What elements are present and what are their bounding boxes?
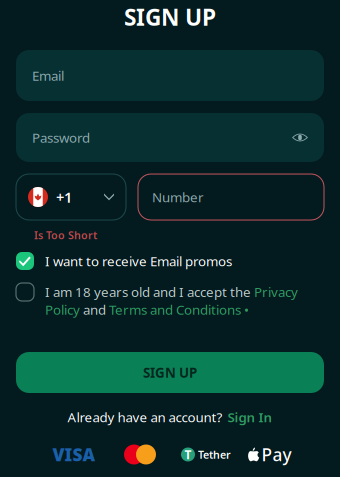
staticText: Number <box>152 188 204 206</box>
staticText: Already have an account? <box>67 408 222 426</box>
button[interactable]: +1 <box>16 174 126 220</box>
staticText: SIGN UP <box>143 364 197 381</box>
staticText: T <box>184 446 191 462</box>
staticText: I am 18 years old and I accept the Priva… <box>45 283 298 318</box>
staticText: Email <box>32 67 64 84</box>
staticText: Tether <box>198 447 231 462</box>
staticText: VISA <box>52 443 95 466</box>
button[interactable]: Sign In <box>227 408 272 426</box>
button[interactable]: I want to receive Email promos <box>16 251 324 271</box>
staticText: +1 <box>56 187 72 207</box>
staticText: Password <box>32 129 90 146</box>
staticText: I want to receive Email promos <box>45 252 232 270</box>
staticText: SIGN UP <box>124 2 216 32</box>
staticText: Sign In <box>227 408 272 426</box>
button[interactable]: SIGN UP <box>16 352 324 393</box>
button[interactable]: Show password <box>292 131 308 143</box>
button[interactable]: I am 18 years old and I accept the Priva… <box>16 283 324 321</box>
staticText: Pay <box>261 443 291 466</box>
staticText: Is Too Short <box>34 228 97 242</box>
